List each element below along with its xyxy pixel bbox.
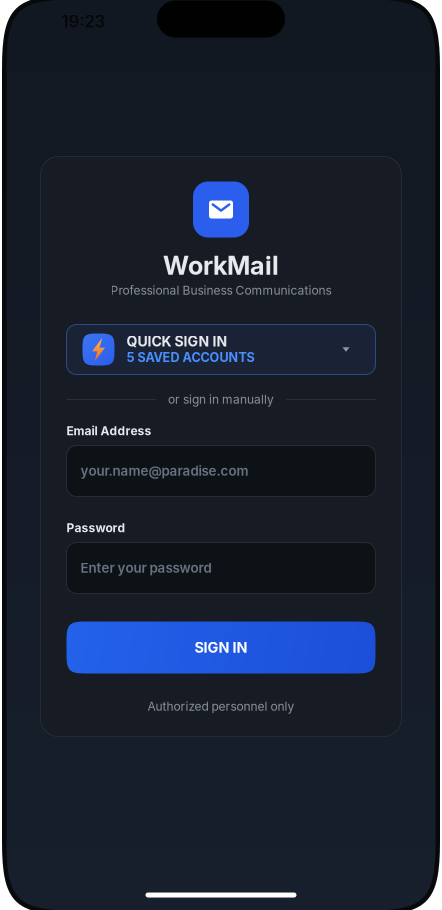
button[interactable]: QUICK SIGN IN xyxy=(66,324,375,374)
staticText: QUICK SIGN IN xyxy=(126,333,227,350)
staticText: or sign in manually xyxy=(168,392,274,407)
staticText: Email Address xyxy=(66,424,151,438)
button[interactable]: Enter your password xyxy=(66,542,375,593)
staticText: SIGN IN xyxy=(194,639,247,656)
button[interactable]: your.name@paradise.com xyxy=(66,445,375,496)
staticText: Password xyxy=(66,521,125,535)
staticText: WorkMail xyxy=(163,250,279,281)
staticText: Enter your password xyxy=(80,560,211,576)
button[interactable]: SIGN IN xyxy=(66,621,375,673)
staticText: Professional Business Communications xyxy=(110,283,331,298)
staticText: 5 SAVED ACCOUNTS xyxy=(126,350,254,365)
staticText: your.name@paradise.com xyxy=(80,463,248,479)
staticText: 19:23 xyxy=(61,11,105,32)
staticText: Authorized personnel only xyxy=(147,699,294,714)
